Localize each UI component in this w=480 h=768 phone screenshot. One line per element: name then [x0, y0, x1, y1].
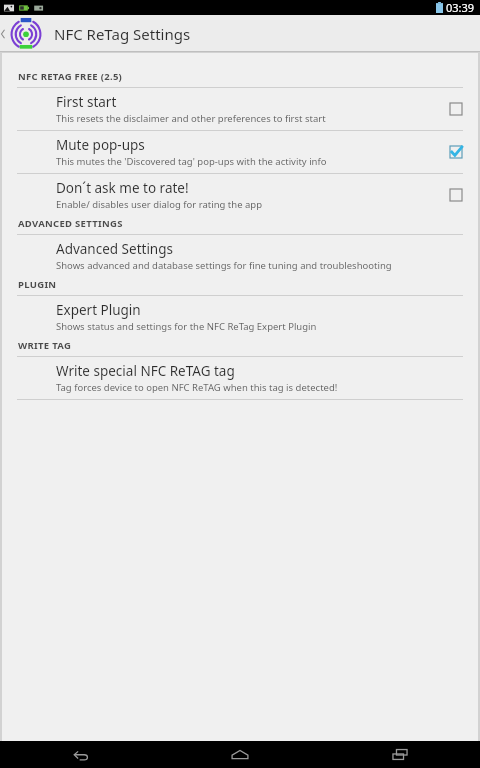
staticText: Shows advanced and database settings for…	[56, 259, 392, 272]
button[interactable]: Don´t ask me to rate!	[0, 174, 480, 216]
staticText: Advanced Settings	[56, 240, 173, 258]
staticText: This mutes the 'Discovered tag' pop-ups …	[56, 155, 327, 168]
button[interactable]: Navigate up	[2, 15, 50, 52]
staticText: Enable/ disables user dialog for rating …	[56, 198, 262, 211]
staticText: This resets the disclaimer and other pre…	[56, 112, 326, 125]
button[interactable]: Recent apps	[320, 741, 480, 768]
staticText: ADVANCED SETTINGS	[18, 217, 123, 230]
staticText: Don´t ask me to rate!	[56, 179, 189, 197]
staticText: PLUGIN	[18, 278, 57, 291]
staticText: First start	[56, 93, 117, 111]
button[interactable]: Expert Plugin	[0, 296, 480, 338]
button[interactable]: Mute pop-ups	[0, 131, 480, 173]
button[interactable]: First start	[0, 88, 480, 130]
staticText: NFC RETAG FREE (2.5)	[18, 70, 123, 83]
staticText: Expert Plugin	[56, 301, 141, 319]
button[interactable]: Advanced Settings	[0, 235, 480, 277]
staticText: Tag forces device to open NFC ReTAG when…	[56, 381, 338, 394]
button[interactable]: Home	[160, 741, 320, 768]
staticText: Write special NFC ReTAG tag	[56, 362, 235, 380]
staticText: 03:39	[446, 0, 475, 15]
button[interactable]: Write special NFC ReTAG tag	[0, 357, 480, 399]
button[interactable]: Back	[0, 741, 160, 768]
staticText: Mute pop-ups	[56, 136, 145, 154]
staticText: WRITE TAG	[18, 339, 72, 352]
staticText: Shows status and settings for the NFC Re…	[56, 320, 317, 333]
staticText: NFC ReTag Settings	[54, 24, 191, 44]
